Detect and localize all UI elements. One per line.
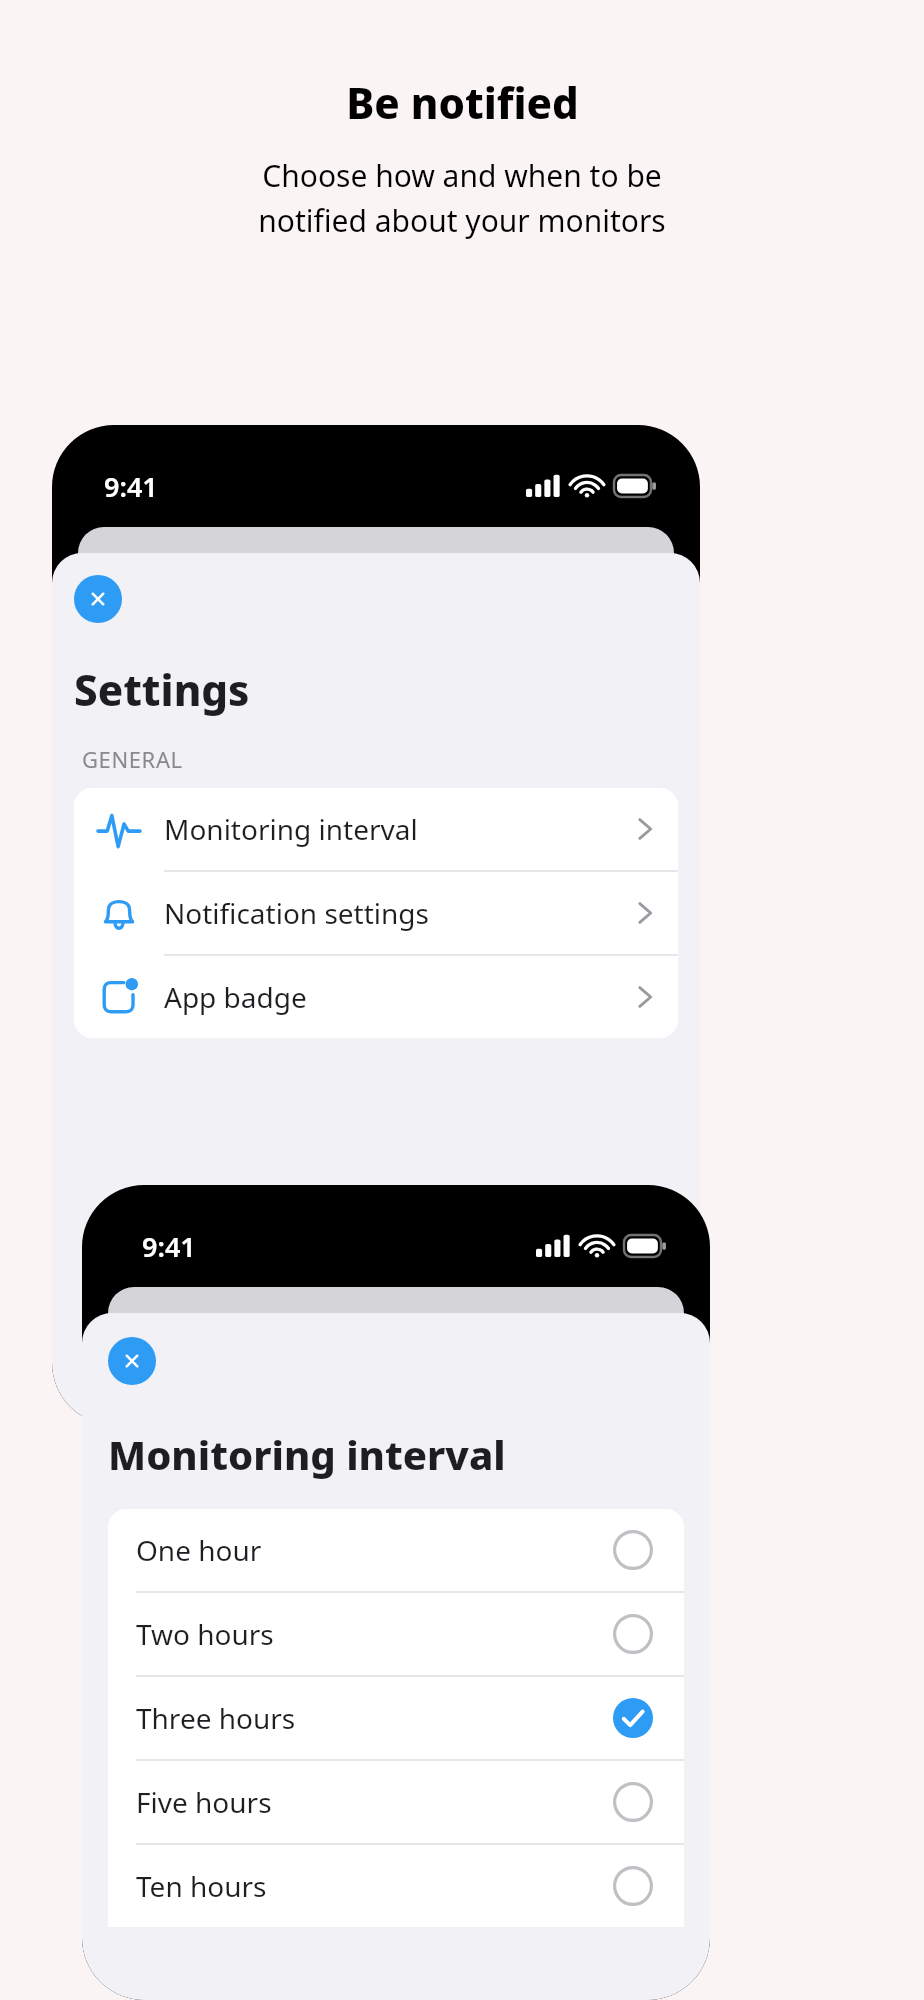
staticText: Be notified [346,74,579,131]
button[interactable]: Two hours [108,1593,684,1677]
staticText: Five hours [136,1783,612,1821]
staticText: Ten hours [136,1867,612,1905]
staticText: Monitoring interval [164,810,612,848]
staticText: One hour [136,1531,612,1569]
button[interactable]: Close [74,575,122,623]
staticText: Settings [74,661,250,718]
button[interactable]: Monitoring interval [74,788,678,872]
button[interactable]: Notification settings [74,872,678,956]
staticText: 9:41 [104,468,158,505]
button[interactable]: One hour [108,1509,684,1593]
staticText: Choose how and when to be notified about… [258,155,666,240]
staticText: Two hours [136,1615,612,1653]
button[interactable]: Five hours [108,1761,684,1845]
staticText: Monitoring interval [108,1427,506,1481]
button[interactable]: Ten hours [108,1845,684,1927]
staticText: 9:41 [142,1228,196,1265]
button[interactable]: App badge [74,956,678,1038]
staticText: App badge [164,978,612,1016]
staticText: Notification settings [164,894,612,932]
button[interactable]: Close [108,1337,156,1385]
staticText: Three hours [136,1699,612,1737]
staticText: GENERAL [82,744,183,774]
button[interactable]: Three hours [108,1677,684,1761]
